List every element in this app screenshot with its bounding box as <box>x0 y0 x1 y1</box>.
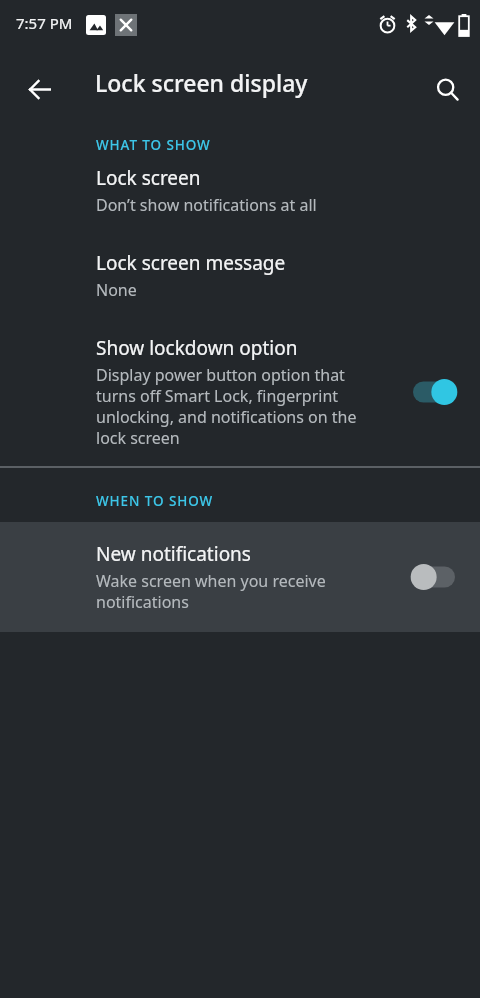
staticText: Wake screen when you receive notificatio… <box>96 570 370 613</box>
staticText: Don’t show notifications at all <box>96 194 317 216</box>
button[interactable]: Toggle off <box>406 557 462 597</box>
button[interactable]: New notifications <box>0 522 480 632</box>
staticText: WHEN TO SHOW <box>96 492 214 510</box>
staticText: 7:57 PM <box>16 13 73 33</box>
button[interactable]: Show lockdown option <box>0 325 480 465</box>
button[interactable]: Search <box>423 65 471 113</box>
staticText: None <box>96 279 137 301</box>
staticText: New notifications <box>96 541 251 567</box>
staticText: WHAT TO SHOW <box>96 136 211 154</box>
button[interactable]: Toggle on <box>406 372 462 412</box>
button[interactable]: Lock screen message <box>0 240 480 325</box>
staticText: Display power button option that turns o… <box>96 364 370 449</box>
staticText: Lock screen display <box>95 67 308 98</box>
staticText: Show lockdown option <box>96 335 298 361</box>
staticText: Lock screen message <box>96 250 286 276</box>
button[interactable]: Back <box>16 65 64 113</box>
staticText: Lock screen <box>96 165 201 191</box>
button[interactable]: Lock screen <box>0 154 480 240</box>
